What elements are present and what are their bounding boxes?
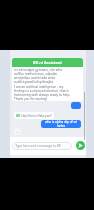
- staticText: ni rah budget gymnasi, ulin wha sofilko …: [14, 68, 63, 84]
- button[interactable]: Type here and a message to BK: [12, 142, 72, 150]
- staticText: Hey! this is Help you?: [21, 114, 52, 118]
- button[interactable]: [71, 102, 81, 109]
- staticText: I am an artificial intelligence - my fee…: [14, 85, 71, 101]
- button[interactable]: Send: [76, 141, 85, 150]
- staticText: who is alpha city of sri lanka: [41, 120, 81, 128]
- button[interactable]: Hey! this is Help you?: [14, 112, 54, 119]
- staticText: ...: [16, 130, 19, 134]
- staticText: Type here and a message to BK: [15, 144, 61, 148]
- button[interactable]: who is alpha city of sri lanka: [41, 120, 81, 128]
- button[interactable]: ...: [14, 128, 21, 135]
- staticText: BK ni Assistant: [33, 60, 62, 65]
- button[interactable]: BK ni Assistant: [12, 58, 83, 101]
